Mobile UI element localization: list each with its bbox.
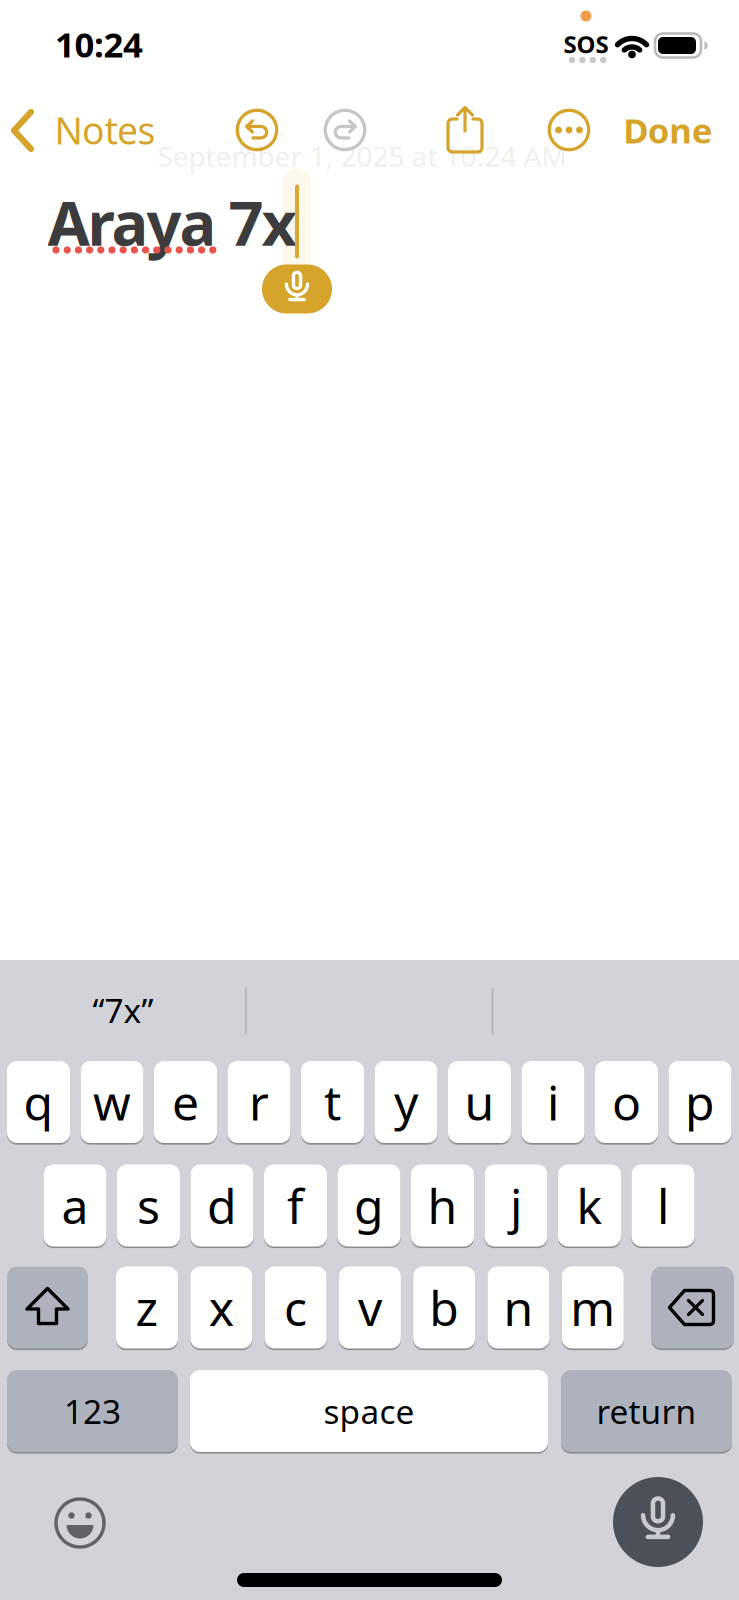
staticText: u: [464, 1070, 494, 1134]
staticText: space: [323, 1389, 414, 1433]
staticText: Notes: [54, 105, 155, 155]
button[interactable]: Shift: [7, 1266, 88, 1348]
button[interactable]: u: [448, 1061, 511, 1143]
button[interactable]: More: [547, 108, 591, 152]
button[interactable]: Notes: [0, 0, 739, 1600]
staticText: return: [596, 1389, 696, 1433]
button[interactable]: Dictate: [613, 1477, 703, 1567]
staticText: t: [324, 1070, 341, 1134]
staticText: c: [284, 1276, 307, 1339]
button[interactable]: Share: [443, 98, 487, 160]
button[interactable]: p: [668, 1061, 731, 1143]
staticText: September 1, 2025 at 10:24 AM: [157, 137, 566, 175]
button[interactable]: f: [264, 1164, 327, 1246]
button[interactable]: v: [339, 1266, 401, 1348]
button[interactable]: x: [190, 1266, 252, 1348]
button[interactable]: a: [43, 1164, 106, 1246]
button[interactable]: z: [116, 1266, 178, 1348]
staticText: q: [23, 1070, 53, 1134]
staticText: z: [135, 1276, 158, 1339]
staticText: p: [685, 1070, 715, 1134]
staticText: i: [547, 1070, 559, 1134]
staticText: w: [93, 1070, 131, 1134]
staticText: d: [207, 1174, 237, 1237]
button[interactable]: h: [411, 1164, 474, 1246]
button[interactable]: i: [521, 1061, 584, 1143]
staticText: k: [576, 1174, 602, 1237]
button[interactable]: q: [7, 1061, 70, 1143]
button[interactable]: 123: [7, 1370, 178, 1452]
button[interactable]: m: [562, 1266, 624, 1348]
button[interactable]: Delete: [651, 1266, 733, 1348]
button[interactable]: l: [631, 1164, 694, 1246]
button[interactable]: Undo: [235, 108, 279, 152]
staticText: v: [358, 1276, 382, 1339]
button[interactable]: y: [374, 1061, 437, 1143]
staticText: n: [503, 1276, 533, 1339]
staticText: h: [427, 1174, 457, 1237]
button[interactable]: Dictation: [262, 264, 332, 313]
staticText: s: [137, 1174, 160, 1237]
staticText: 10:24: [55, 21, 143, 67]
button[interactable]: w: [80, 1061, 143, 1143]
staticText: l: [657, 1174, 669, 1237]
staticText: g: [354, 1174, 384, 1237]
button[interactable]: b: [413, 1266, 475, 1348]
button[interactable]: k: [558, 1164, 621, 1246]
button[interactable]: e: [154, 1061, 217, 1143]
button[interactable]: t: [301, 1061, 364, 1143]
staticText: Done: [623, 107, 713, 153]
staticText: x: [209, 1276, 234, 1339]
button[interactable]: Done: [623, 107, 713, 153]
staticText: SOS: [563, 28, 608, 60]
staticText: f: [287, 1174, 304, 1237]
button[interactable]: r: [227, 1061, 290, 1143]
button[interactable]: s: [117, 1164, 180, 1246]
staticText: b: [429, 1276, 459, 1339]
staticText: a: [61, 1174, 88, 1237]
button[interactable]: c: [265, 1266, 327, 1348]
button[interactable]: d: [190, 1164, 253, 1246]
staticText: m: [570, 1276, 615, 1339]
staticText: r: [249, 1070, 269, 1134]
button[interactable]: space: [190, 1370, 548, 1452]
staticText: 123: [64, 1389, 121, 1433]
button[interactable]: n: [487, 1266, 549, 1348]
staticText: y: [394, 1070, 418, 1134]
staticText: j: [510, 1174, 522, 1237]
staticText: Araya 7x: [47, 181, 296, 263]
staticText: e: [172, 1070, 199, 1134]
button[interactable]: Emoji: [52, 1495, 108, 1551]
button[interactable]: o: [595, 1061, 658, 1143]
button[interactable]: g: [337, 1164, 400, 1246]
staticText: “7x”: [92, 988, 153, 1032]
staticText: o: [612, 1070, 641, 1134]
button[interactable]: return: [561, 1370, 732, 1452]
button[interactable]: j: [484, 1164, 547, 1246]
button[interactable]: Redo: [323, 108, 367, 152]
